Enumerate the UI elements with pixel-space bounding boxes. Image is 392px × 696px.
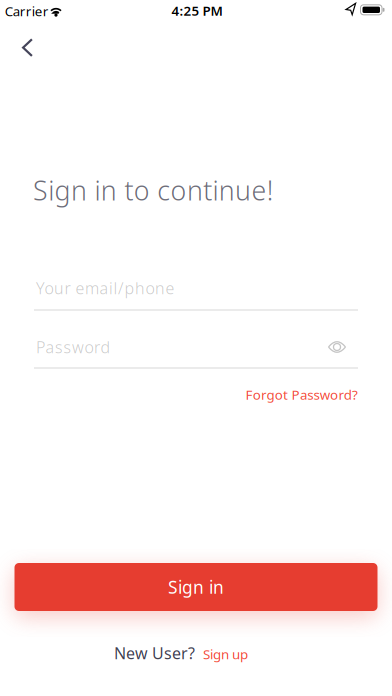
staticText: Your email/phone [36,277,174,299]
staticText: Sign up [203,645,248,663]
staticText: Sign in [168,575,224,598]
button[interactable]: Forgot Password? [245,386,358,403]
button[interactable]: Show password [325,335,349,359]
button[interactable]: Sign up [203,645,248,663]
button[interactable]: Sign in [14,563,377,611]
button[interactable]: Back [5,25,49,69]
staticText: New User? [114,642,195,664]
staticText: Sign in to continue! [33,172,274,208]
staticText: Password [36,336,110,358]
staticText: Forgot Password? [245,386,358,403]
staticText: Carrier [5,2,49,20]
staticText: 4:25 PM [171,2,222,19]
